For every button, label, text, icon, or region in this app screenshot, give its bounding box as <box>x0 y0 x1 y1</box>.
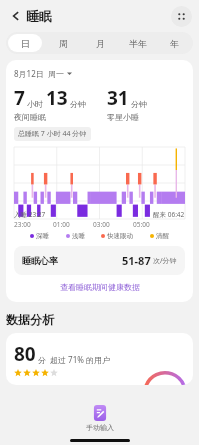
staticText: 快速眼动 <box>107 232 133 240</box>
button[interactable]: 周 <box>46 34 80 52</box>
staticText: 周 <box>59 38 68 49</box>
staticText: 日 <box>21 38 30 49</box>
button[interactable]: Back <box>4 4 28 28</box>
staticText: 23:00 <box>14 220 31 229</box>
button[interactable]: 80 <box>6 333 193 385</box>
staticText: 睡眠 <box>26 8 52 24</box>
staticText: 7 <box>14 85 25 111</box>
staticText: 浅睡 <box>72 232 85 240</box>
staticText: 夜间睡眠 <box>14 112 46 122</box>
staticText: 深睡 <box>36 232 49 240</box>
staticText: 清醒 <box>156 232 169 240</box>
staticText: 睡眠心率 <box>22 255 58 266</box>
staticText: 03:00 <box>93 220 110 229</box>
staticText: 总睡眠 7 小时 44 分钟 <box>18 129 87 139</box>
staticText: 年 <box>170 38 179 49</box>
staticText: 超过 71% 的用户 <box>50 354 110 365</box>
staticText: 05:00 <box>133 220 150 229</box>
button[interactable]: 查看睡眠期间健康数据 <box>14 282 185 292</box>
staticText: 分 <box>38 355 46 365</box>
staticText: 零星小睡 <box>107 112 139 122</box>
staticText: 分钟 <box>70 99 86 109</box>
staticText: 查看睡眠期间健康数据 <box>60 282 140 292</box>
button[interactable]: 睡眠心率 <box>14 246 185 275</box>
staticText: 31 <box>107 85 129 111</box>
button[interactable]: More options <box>171 6 192 27</box>
staticText: 分钟 <box>131 99 147 109</box>
staticText: 01:00 <box>53 220 70 229</box>
staticText: 数据分析 <box>6 312 54 327</box>
staticText: 手动输入 <box>86 423 114 432</box>
staticText: 8月12日 周一 <box>14 68 64 79</box>
staticText: 13 <box>46 85 68 111</box>
staticText: 次/分钟 <box>153 256 177 266</box>
staticText: 半年 <box>129 38 147 49</box>
staticText: 入睡 23:27 <box>14 210 46 219</box>
staticText: 80 <box>14 341 36 367</box>
button[interactable]: 手动输入 <box>78 403 122 434</box>
button[interactable]: 日 <box>8 34 42 52</box>
button[interactable]: 月 <box>84 34 117 52</box>
staticText: 小时 <box>27 99 43 109</box>
staticText: 月 <box>96 38 105 49</box>
button[interactable]: 8月12日 周一 <box>14 68 72 79</box>
button[interactable]: 年 <box>158 34 191 52</box>
staticText: 51-87 <box>122 253 151 268</box>
button[interactable]: 半年 <box>121 34 154 52</box>
staticText: 醒来 06:42 <box>153 210 185 219</box>
